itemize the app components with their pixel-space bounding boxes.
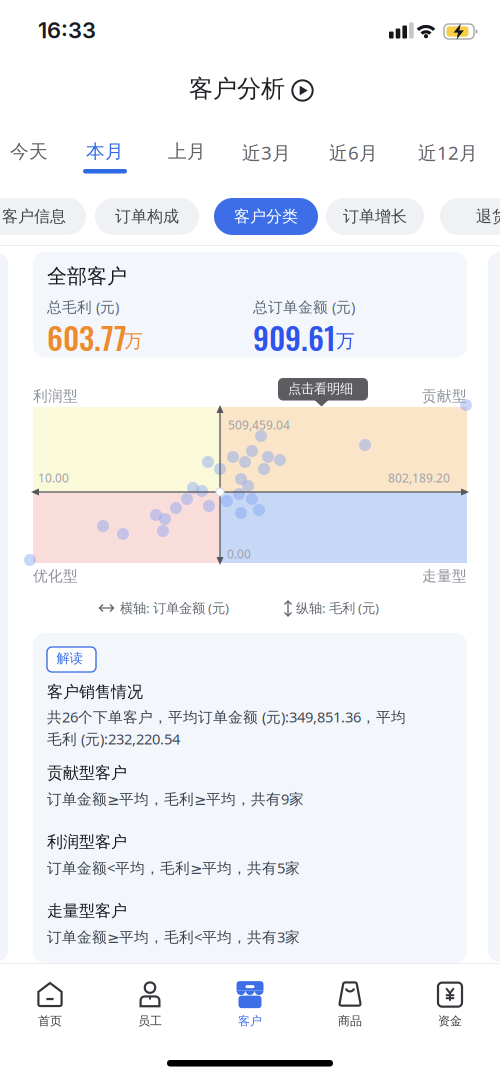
button[interactable]: 客户信息 [0, 198, 86, 235]
staticText: 603.77 [47, 314, 127, 360]
button[interactable]: 订单构成 [95, 198, 199, 235]
staticText: 订单金额≥平均，毛利≥平均，共有9家 [47, 789, 304, 808]
staticText: 利润型客户 [47, 832, 127, 852]
staticText: 订单金额<平均，毛利≥平均，共有5家 [47, 858, 300, 877]
button[interactable]: 资金 [412, 977, 488, 1031]
staticText: 利润型 [33, 387, 78, 405]
staticText: 贡献型客户 [47, 763, 127, 783]
staticText: 横轴: 订单金额 (元) [120, 599, 229, 617]
staticText: 走量型 [422, 567, 467, 585]
staticText: 0.00 [227, 546, 251, 562]
staticText: 509,459.04 [228, 417, 290, 433]
staticText: 首页 [38, 1014, 62, 1028]
staticText: 近3月 [242, 140, 291, 165]
staticText: 客户 [238, 1014, 262, 1028]
button[interactable]: 员工 [112, 977, 188, 1031]
staticText: 全部客户 [47, 264, 127, 289]
staticText: 总订单金额 (元) [253, 297, 355, 316]
staticText: 客户信息 [2, 207, 66, 226]
button[interactable]: 订单增长 [326, 198, 424, 235]
button[interactable]: 上月 [164, 137, 210, 166]
staticText: 退货 [476, 207, 500, 226]
staticText: 订单增长 [343, 207, 407, 226]
staticText: 点击看明细 [288, 380, 353, 397]
staticText: 万 [336, 329, 355, 352]
button[interactable]: 客户分类 [214, 198, 318, 235]
staticText: 客户分析 [189, 74, 285, 103]
staticText: 10.00 [38, 470, 69, 486]
button[interactable]: 播放 [291, 79, 313, 101]
button[interactable]: 今天 [6, 137, 52, 166]
staticText: 今天 [10, 140, 48, 163]
staticText: 近6月 [329, 140, 378, 165]
staticText: 解读 [56, 650, 82, 666]
staticText: 近12月 [418, 140, 478, 165]
staticText: 16:33 [38, 17, 96, 44]
button[interactable]: 首页 [12, 977, 88, 1031]
staticText: 客户销售情况 [47, 682, 143, 702]
staticText: 走量型客户 [47, 901, 127, 921]
staticText: 员工 [138, 1014, 162, 1028]
button[interactable]: 近3月 [238, 137, 295, 168]
button[interactable]: 客户 [212, 977, 288, 1031]
button[interactable]: 近12月 [414, 137, 482, 168]
staticText: 纵轴: 毛利 (元) [296, 599, 379, 617]
staticText: 订单构成 [115, 207, 179, 226]
staticText: 上月 [168, 140, 206, 163]
staticText: 总毛利 (元) [47, 297, 119, 316]
staticText: 商品 [338, 1014, 362, 1028]
button[interactable]: 商品 [312, 977, 388, 1031]
staticText: 毛利 (元):232,220.54 [47, 729, 180, 748]
button[interactable]: 本月 [82, 137, 128, 166]
staticText: 909.61 [253, 314, 336, 360]
staticText: 万 [124, 329, 143, 352]
staticText: 优化型 [33, 567, 78, 585]
staticText: 共26个下单客户，平均订单金额 (元):349,851.36，平均 [47, 707, 406, 726]
staticText: 贡献型 [422, 387, 467, 405]
staticText: 本月 [86, 140, 124, 163]
staticText: 802,189.20 [388, 470, 450, 486]
staticText: 客户分类 [234, 207, 298, 226]
staticText: 订单金额≥平均，毛利<平均，共有3家 [47, 927, 300, 946]
button[interactable]: 近6月 [325, 137, 382, 168]
staticText: 资金 [438, 1014, 462, 1028]
button[interactable]: 退货 [440, 198, 500, 235]
